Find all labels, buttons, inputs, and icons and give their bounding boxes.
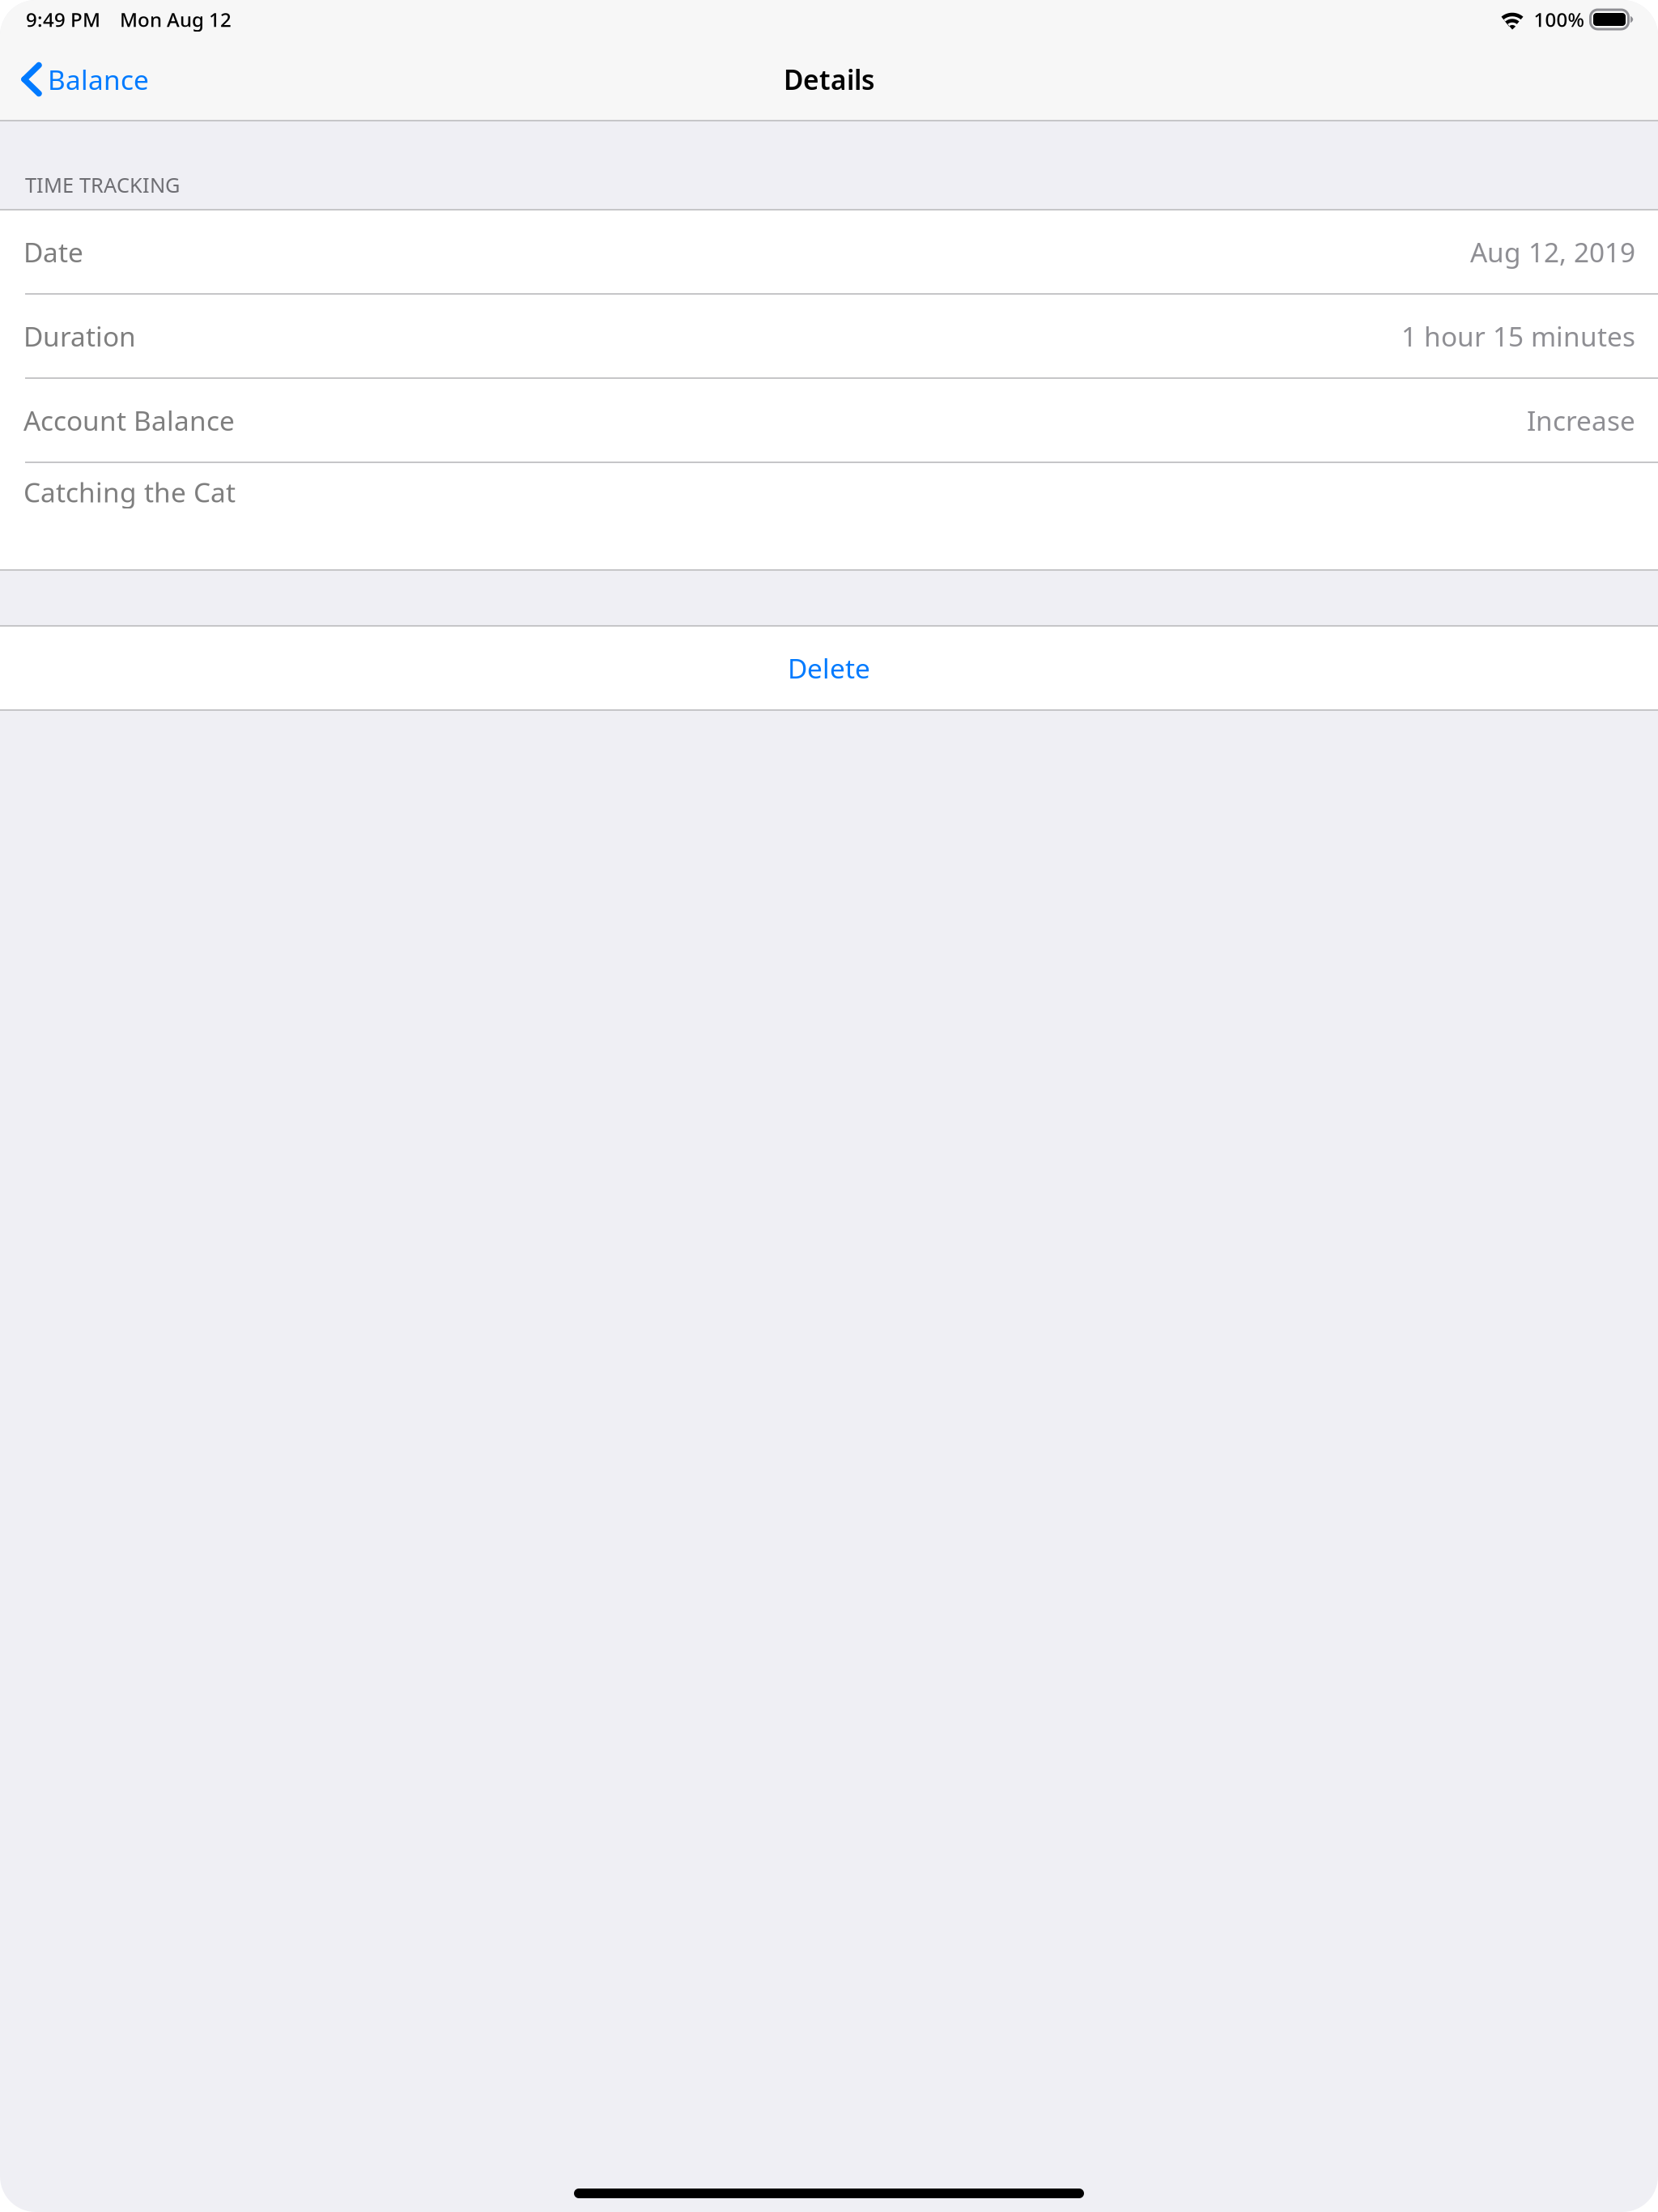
staticText: Aug 12, 2019 (1470, 234, 1635, 270)
staticText: Account Balance (23, 402, 235, 438)
staticText: Duration (23, 318, 136, 354)
staticText: Date (23, 234, 83, 270)
staticText: Details (784, 61, 874, 97)
staticText: Balance (48, 61, 149, 97)
staticText: Delete (788, 650, 870, 686)
staticText: Catching the Cat (23, 474, 236, 510)
staticText: 100% (1534, 7, 1584, 32)
staticText: 9:49 PM (26, 7, 100, 32)
staticText: Increase (1527, 402, 1635, 438)
staticText: 1 hour 15 minutes (1401, 318, 1635, 354)
button[interactable]: Account Balance (0, 379, 1658, 462)
staticText: TIME TRACKING (25, 171, 180, 198)
staticText: Mon Aug 12 (120, 7, 232, 32)
button[interactable]: Balance (0, 39, 167, 120)
button[interactable]: Delete (0, 627, 1658, 709)
button[interactable]: Date (0, 211, 1658, 293)
button[interactable]: Catching the Cat (0, 463, 1658, 521)
button[interactable]: Duration (0, 295, 1658, 377)
